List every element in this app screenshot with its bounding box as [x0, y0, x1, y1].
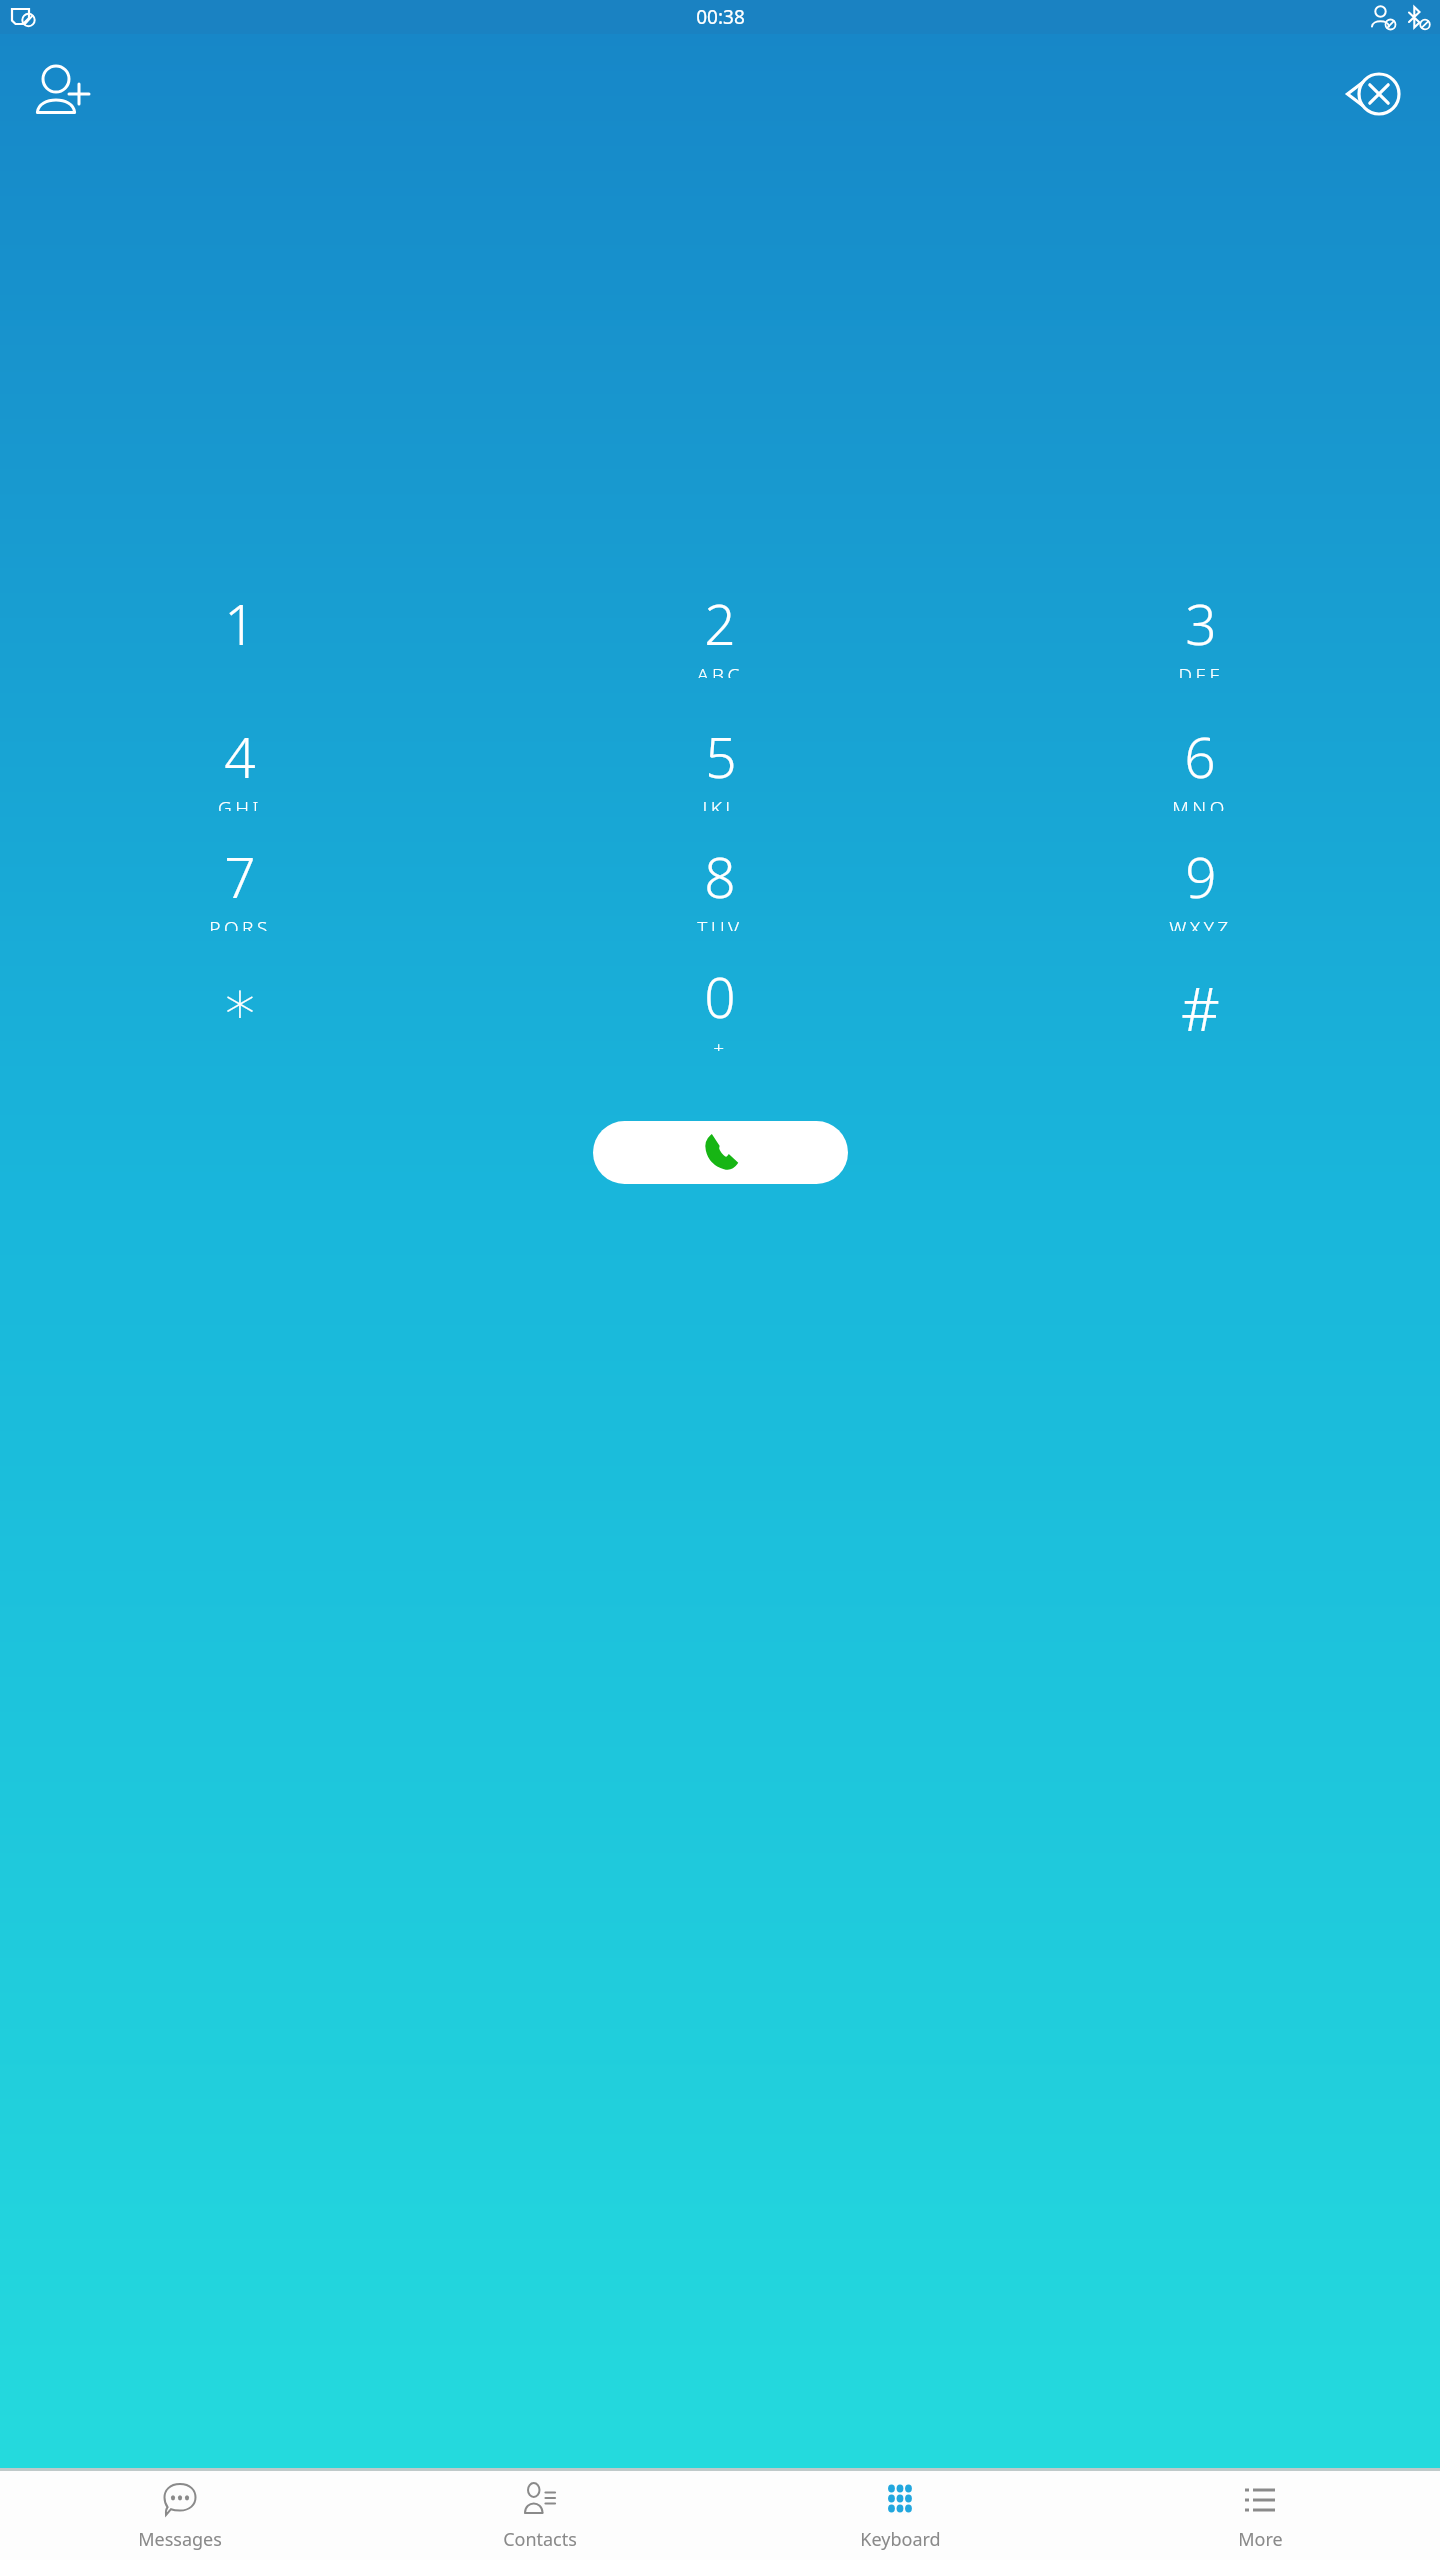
staticText: 5 [705, 719, 737, 794]
staticText: WXYZ [1169, 915, 1232, 931]
staticText: # [1181, 967, 1220, 1049]
button[interactable]: Delete [1332, 52, 1416, 136]
staticText: TUV [697, 915, 743, 931]
button[interactable]: 9 [960, 839, 1440, 931]
button[interactable]: 3 [960, 586, 1440, 678]
button[interactable]: Messages [0, 2471, 360, 2560]
button[interactable]: 2 [480, 586, 960, 678]
button[interactable]: Add contact [22, 52, 106, 136]
staticText: PQRS [209, 915, 271, 931]
staticText: 0 [704, 959, 736, 1034]
button[interactable]: Keyboard [720, 2471, 1080, 2560]
button[interactable]: 0 [480, 959, 960, 1051]
button[interactable]: More [1080, 2471, 1440, 2560]
staticText: + [713, 1035, 728, 1051]
staticText: 4 [224, 719, 256, 794]
button[interactable]: 7 [0, 839, 480, 931]
staticText: Keyboard [860, 2527, 941, 2552]
staticText: 00:38 [696, 4, 745, 30]
staticText: 6 [1184, 719, 1216, 794]
staticText: 7 [224, 839, 256, 914]
staticText: JKL [702, 795, 739, 811]
staticText: 3 [1185, 586, 1217, 661]
button[interactable]: Contacts [360, 2471, 720, 2560]
staticText: 2 [704, 586, 736, 661]
staticText: 1 [224, 586, 256, 661]
staticText: DEF [1178, 662, 1223, 678]
staticText: MNO [1172, 795, 1228, 811]
button[interactable]: 8 [480, 839, 960, 931]
staticText: 8 [704, 839, 736, 914]
button[interactable]: Call [593, 1121, 848, 1184]
staticText: ABC [697, 662, 743, 678]
staticText: GHI [218, 795, 262, 811]
button[interactable]: 6 [960, 719, 1440, 811]
button[interactable]: 5 [480, 719, 960, 811]
button[interactable]: 4 [0, 719, 480, 811]
button[interactable]: # [960, 959, 1440, 1051]
staticText: 9 [1185, 839, 1217, 914]
staticText: ∗ [221, 967, 259, 1037]
button[interactable]: 1 [0, 586, 480, 678]
staticText: Contacts [503, 2527, 577, 2552]
staticText: Messages [138, 2527, 222, 2552]
button[interactable]: ∗ [0, 959, 480, 1051]
staticText: More [1238, 2527, 1283, 2552]
